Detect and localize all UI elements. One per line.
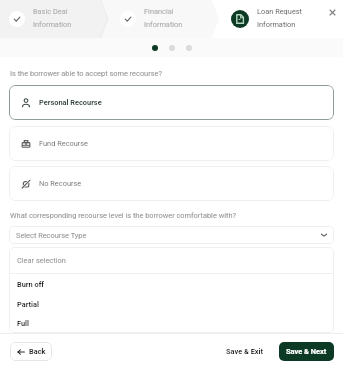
button[interactable]: Select Recourse Type	[9, 226, 334, 244]
button[interactable]: Close	[324, 4, 340, 20]
staticText: Clear selection	[17, 256, 66, 265]
button[interactable]: Partial	[9, 294, 334, 314]
staticText: Fund Recourse	[39, 139, 89, 148]
staticText: Personal Recourse	[39, 98, 102, 107]
staticText: Information	[33, 20, 72, 29]
staticText: Select Recourse Type	[16, 231, 87, 240]
button[interactable]: Basic Deal	[9, 0, 343, 38]
button[interactable]: Full	[9, 314, 334, 333]
button[interactable]: Save & Exit	[220, 342, 270, 361]
staticText: Back	[29, 347, 46, 356]
staticText: What corresponding recourse level is the…	[10, 211, 236, 220]
staticText: Loan Request	[257, 7, 303, 16]
staticText: Information	[257, 20, 296, 29]
staticText: Full	[17, 319, 30, 328]
button[interactable]: Clear selection	[9, 247, 334, 273]
button[interactable]: Personal Recourse	[9, 85, 334, 120]
staticText: Burn off	[17, 280, 45, 289]
button[interactable]: No Recourse	[9, 166, 334, 201]
button[interactable]: Back	[10, 342, 52, 361]
staticText: No Recourse	[39, 179, 82, 188]
staticText: Financial	[144, 7, 174, 16]
button[interactable]: Burn off	[9, 274, 334, 294]
staticText: Basic Deal	[33, 7, 68, 16]
staticText: Save & Next	[286, 347, 327, 356]
staticText: Partial	[17, 300, 39, 309]
button[interactable]: Save & Next	[279, 342, 334, 361]
staticText: Is the borrower able to accept some reco…	[10, 69, 162, 78]
staticText: Save & Exit	[226, 347, 264, 356]
button[interactable]: Fund Recourse	[9, 126, 334, 161]
button[interactable]: Financial	[120, 0, 343, 38]
button[interactable]: Loan Request	[231, 0, 343, 38]
staticText: Information	[144, 20, 183, 29]
